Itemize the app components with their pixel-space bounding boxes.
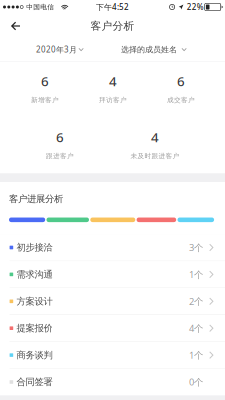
button[interactable]: 方案设计 [0,288,225,314]
button[interactable]: 选择的成员姓名 [105,38,225,61]
staticText: 4个 [189,322,203,334]
button[interactable]: 合同签署 [0,369,225,395]
staticText: 选择的成员姓名 [121,45,177,54]
staticText: 合同签署 [16,376,52,388]
staticText: 成交客户 [167,96,195,104]
staticText: 3个 [189,241,203,254]
staticText: 初步接洽 [16,242,52,253]
staticText: 2个 [189,295,203,307]
staticText: 1个 [189,268,203,281]
staticText: 客户进展分析 [9,193,63,205]
staticText: 提案报价 [16,322,52,334]
staticText: 1个 [189,349,203,361]
staticText: 中国电信 [26,3,54,11]
button[interactable]: 2020年3月 [0,38,105,61]
staticText: 下午4:52 [96,2,129,12]
staticText: 4 [151,128,159,146]
staticText: 4 [109,72,117,90]
button[interactable]: 初步接洽 [0,234,225,261]
button[interactable]: 需求沟通 [0,261,225,288]
staticText: 新增客户 [31,96,59,104]
staticText: 拜访客户 [99,96,127,104]
button[interactable]: 商务谈判 [0,342,225,368]
staticText: 0个 [189,376,203,388]
staticText: 2020年3月 [36,44,77,55]
staticText: 跟进客户 [46,152,74,160]
staticText: 需求沟通 [16,269,52,280]
button[interactable]: 返回 [0,15,29,37]
staticText: 6 [177,72,185,90]
staticText: 6 [41,72,49,90]
staticText: 客户分析 [90,19,134,32]
button[interactable]: 提案报价 [0,315,225,341]
staticText: 未及时跟进客户 [130,152,179,160]
staticText: 方案设计 [16,296,52,307]
staticText: 6 [56,128,64,146]
staticText: 商务谈判 [16,349,52,361]
staticText: 22% [187,2,204,12]
